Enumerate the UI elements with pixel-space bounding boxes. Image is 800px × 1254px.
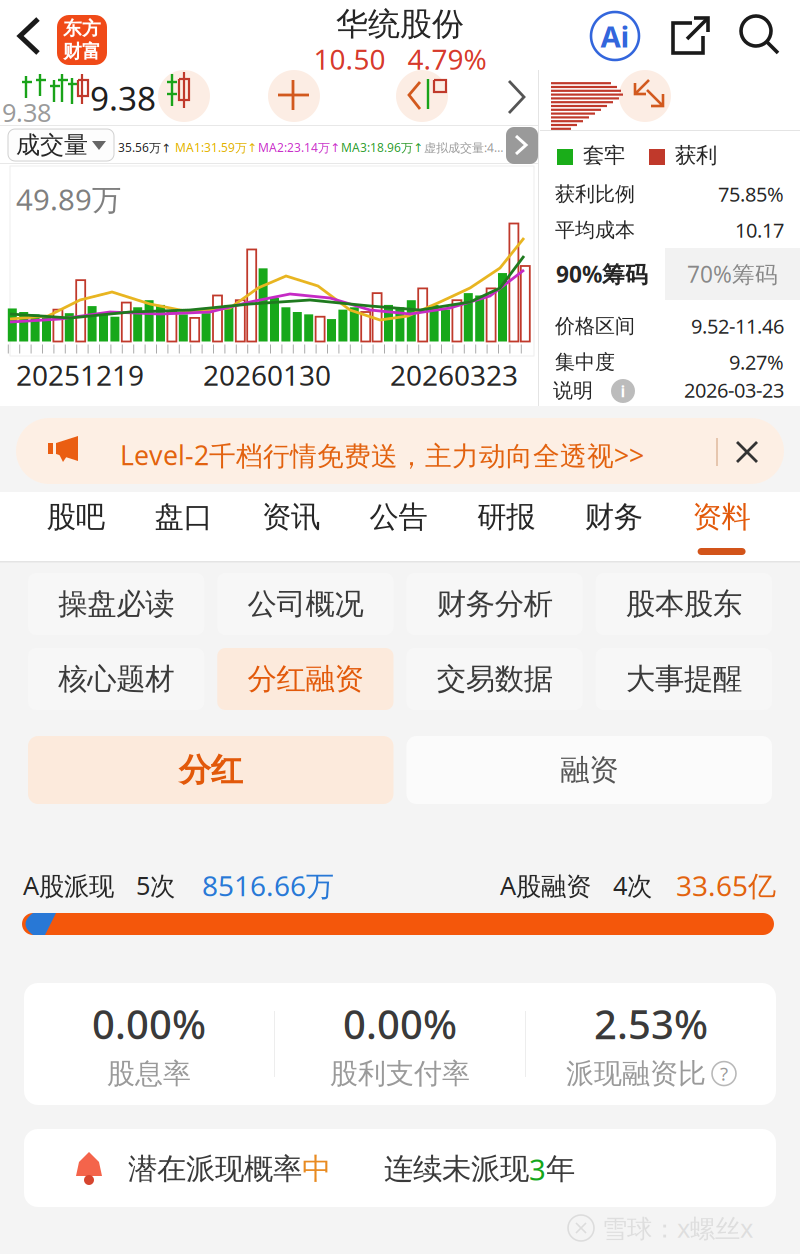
- staticText: 33.65亿: [676, 867, 776, 904]
- staticText: 20260323: [390, 356, 518, 394]
- staticText: 连续未派现: [384, 1151, 529, 1187]
- staticText: 交易数据: [437, 661, 553, 697]
- button[interactable]: 股本股东: [596, 573, 772, 635]
- button[interactable]: 交易数据: [406, 648, 583, 710]
- button[interactable]: 搜索: [736, 12, 784, 60]
- staticText: 8516.66万: [202, 867, 334, 904]
- staticText: MA2:23.14万↑: [258, 139, 340, 155]
- staticText: 股本股东: [626, 586, 742, 622]
- staticText: 0.00%: [343, 997, 457, 1050]
- staticText: 0.00%: [92, 997, 206, 1050]
- staticText: 盘口: [154, 499, 212, 535]
- staticText: 潜在派现概率: [128, 1151, 302, 1187]
- staticText: 9.27%: [729, 349, 784, 375]
- button[interactable]: 资讯: [237, 492, 345, 561]
- staticText: 90%筹码: [556, 259, 648, 289]
- button[interactable]: 公告: [345, 492, 452, 561]
- staticText: 9.38: [90, 76, 156, 120]
- staticText: 公司概况: [247, 586, 363, 622]
- staticText: 9.52-11.46: [691, 313, 784, 339]
- staticText: 财富: [63, 40, 101, 63]
- button[interactable]: 融资: [406, 736, 772, 804]
- button[interactable]: 90%筹码: [539, 248, 665, 300]
- staticText: 东方: [63, 17, 101, 40]
- staticText: 10.50: [313, 40, 385, 78]
- staticText: Ai: [600, 16, 629, 55]
- staticText: 4.79%: [407, 40, 486, 78]
- staticText: 股吧: [47, 499, 105, 535]
- button[interactable]: 分红融资: [217, 648, 393, 710]
- staticText: 集中度: [555, 350, 615, 374]
- button[interactable]: 东方财富: [57, 15, 107, 65]
- button[interactable]: 分红: [28, 736, 393, 804]
- staticText: 10.17: [735, 217, 784, 243]
- button[interactable]: 资料: [668, 492, 775, 561]
- staticText: 融资: [560, 752, 618, 788]
- staticText: 20251219: [16, 356, 144, 394]
- staticText: 4次: [613, 868, 652, 902]
- button[interactable]: 盘口: [130, 492, 237, 561]
- staticText: 财务: [585, 499, 643, 535]
- staticText: 2.53%: [594, 997, 708, 1050]
- staticText: 70%筹码: [687, 259, 778, 289]
- staticText: 资料: [692, 499, 750, 535]
- staticText: 操盘必读: [58, 586, 174, 622]
- staticText: 套牢: [583, 142, 625, 168]
- staticText: 年: [546, 1151, 575, 1187]
- staticText: ?: [720, 1061, 728, 1086]
- button[interactable]: 更多指标: [506, 127, 538, 164]
- staticText: i: [620, 380, 625, 402]
- staticText: 20260130: [203, 356, 331, 394]
- staticText: 说明: [553, 378, 593, 403]
- button[interactable]: 70%筹码: [665, 248, 800, 300]
- staticText: 3: [529, 1149, 546, 1188]
- staticText: A股派现: [23, 868, 114, 902]
- staticText: A股融资: [500, 868, 591, 902]
- staticText: MA3:18.96万↑: [341, 139, 423, 155]
- button[interactable]: 分享: [666, 12, 714, 60]
- staticText: Level-2千档行情免费送，主力动向全透视>>: [120, 437, 644, 473]
- button[interactable]: 公司概况: [217, 573, 393, 635]
- staticText: 75.85%: [718, 181, 784, 207]
- button[interactable]: AI助手: [586, 10, 644, 62]
- staticText: 公告: [370, 499, 428, 535]
- staticText: 雪球：x螺丝x: [602, 1211, 753, 1245]
- staticText: 财务分析: [437, 586, 553, 622]
- staticText: 5次: [136, 868, 175, 902]
- staticText: 研报: [477, 499, 535, 535]
- staticText: 分红: [179, 750, 243, 790]
- staticText: 中: [302, 1151, 331, 1187]
- staticText: 2026-03-23: [684, 377, 784, 403]
- button[interactable]: 操盘必读: [28, 573, 204, 635]
- staticText: 核心题材: [58, 661, 174, 697]
- staticText: 获利比例: [555, 182, 635, 206]
- staticText: 虚拟成交量:48.09万: [424, 139, 504, 155]
- button[interactable]: 股吧: [22, 492, 130, 561]
- staticText: MA1:31.59万↑: [175, 139, 257, 155]
- button[interactable]: 返回: [14, 16, 48, 56]
- staticText: 49.89万: [16, 179, 121, 218]
- staticText: 平均成本: [555, 218, 635, 242]
- staticText: 派现融资比: [566, 1056, 706, 1091]
- button[interactable]: Level-2千档行情免费送，主力动向全透视>>: [0, 418, 800, 484]
- button[interactable]: 财务分析: [406, 573, 583, 635]
- staticText: 大事提醒: [626, 661, 742, 697]
- staticText: 股利支付率: [330, 1056, 470, 1091]
- button[interactable]: 大事提醒: [596, 648, 772, 710]
- button[interactable]: 核心题材: [28, 648, 204, 710]
- staticText: 股息率: [107, 1056, 191, 1091]
- staticText: 9.38: [2, 95, 51, 129]
- button[interactable]: 财务: [560, 492, 668, 561]
- staticText: 获利: [675, 142, 717, 168]
- staticText: 成交量: [16, 130, 88, 160]
- staticText: 资讯: [262, 499, 320, 535]
- staticText: 价格区间: [555, 314, 635, 338]
- staticText: 分红融资: [247, 661, 363, 697]
- button[interactable]: 研报: [452, 492, 560, 561]
- staticText: 35.56万↑: [118, 139, 171, 155]
- staticText: 华统股份: [336, 4, 464, 44]
